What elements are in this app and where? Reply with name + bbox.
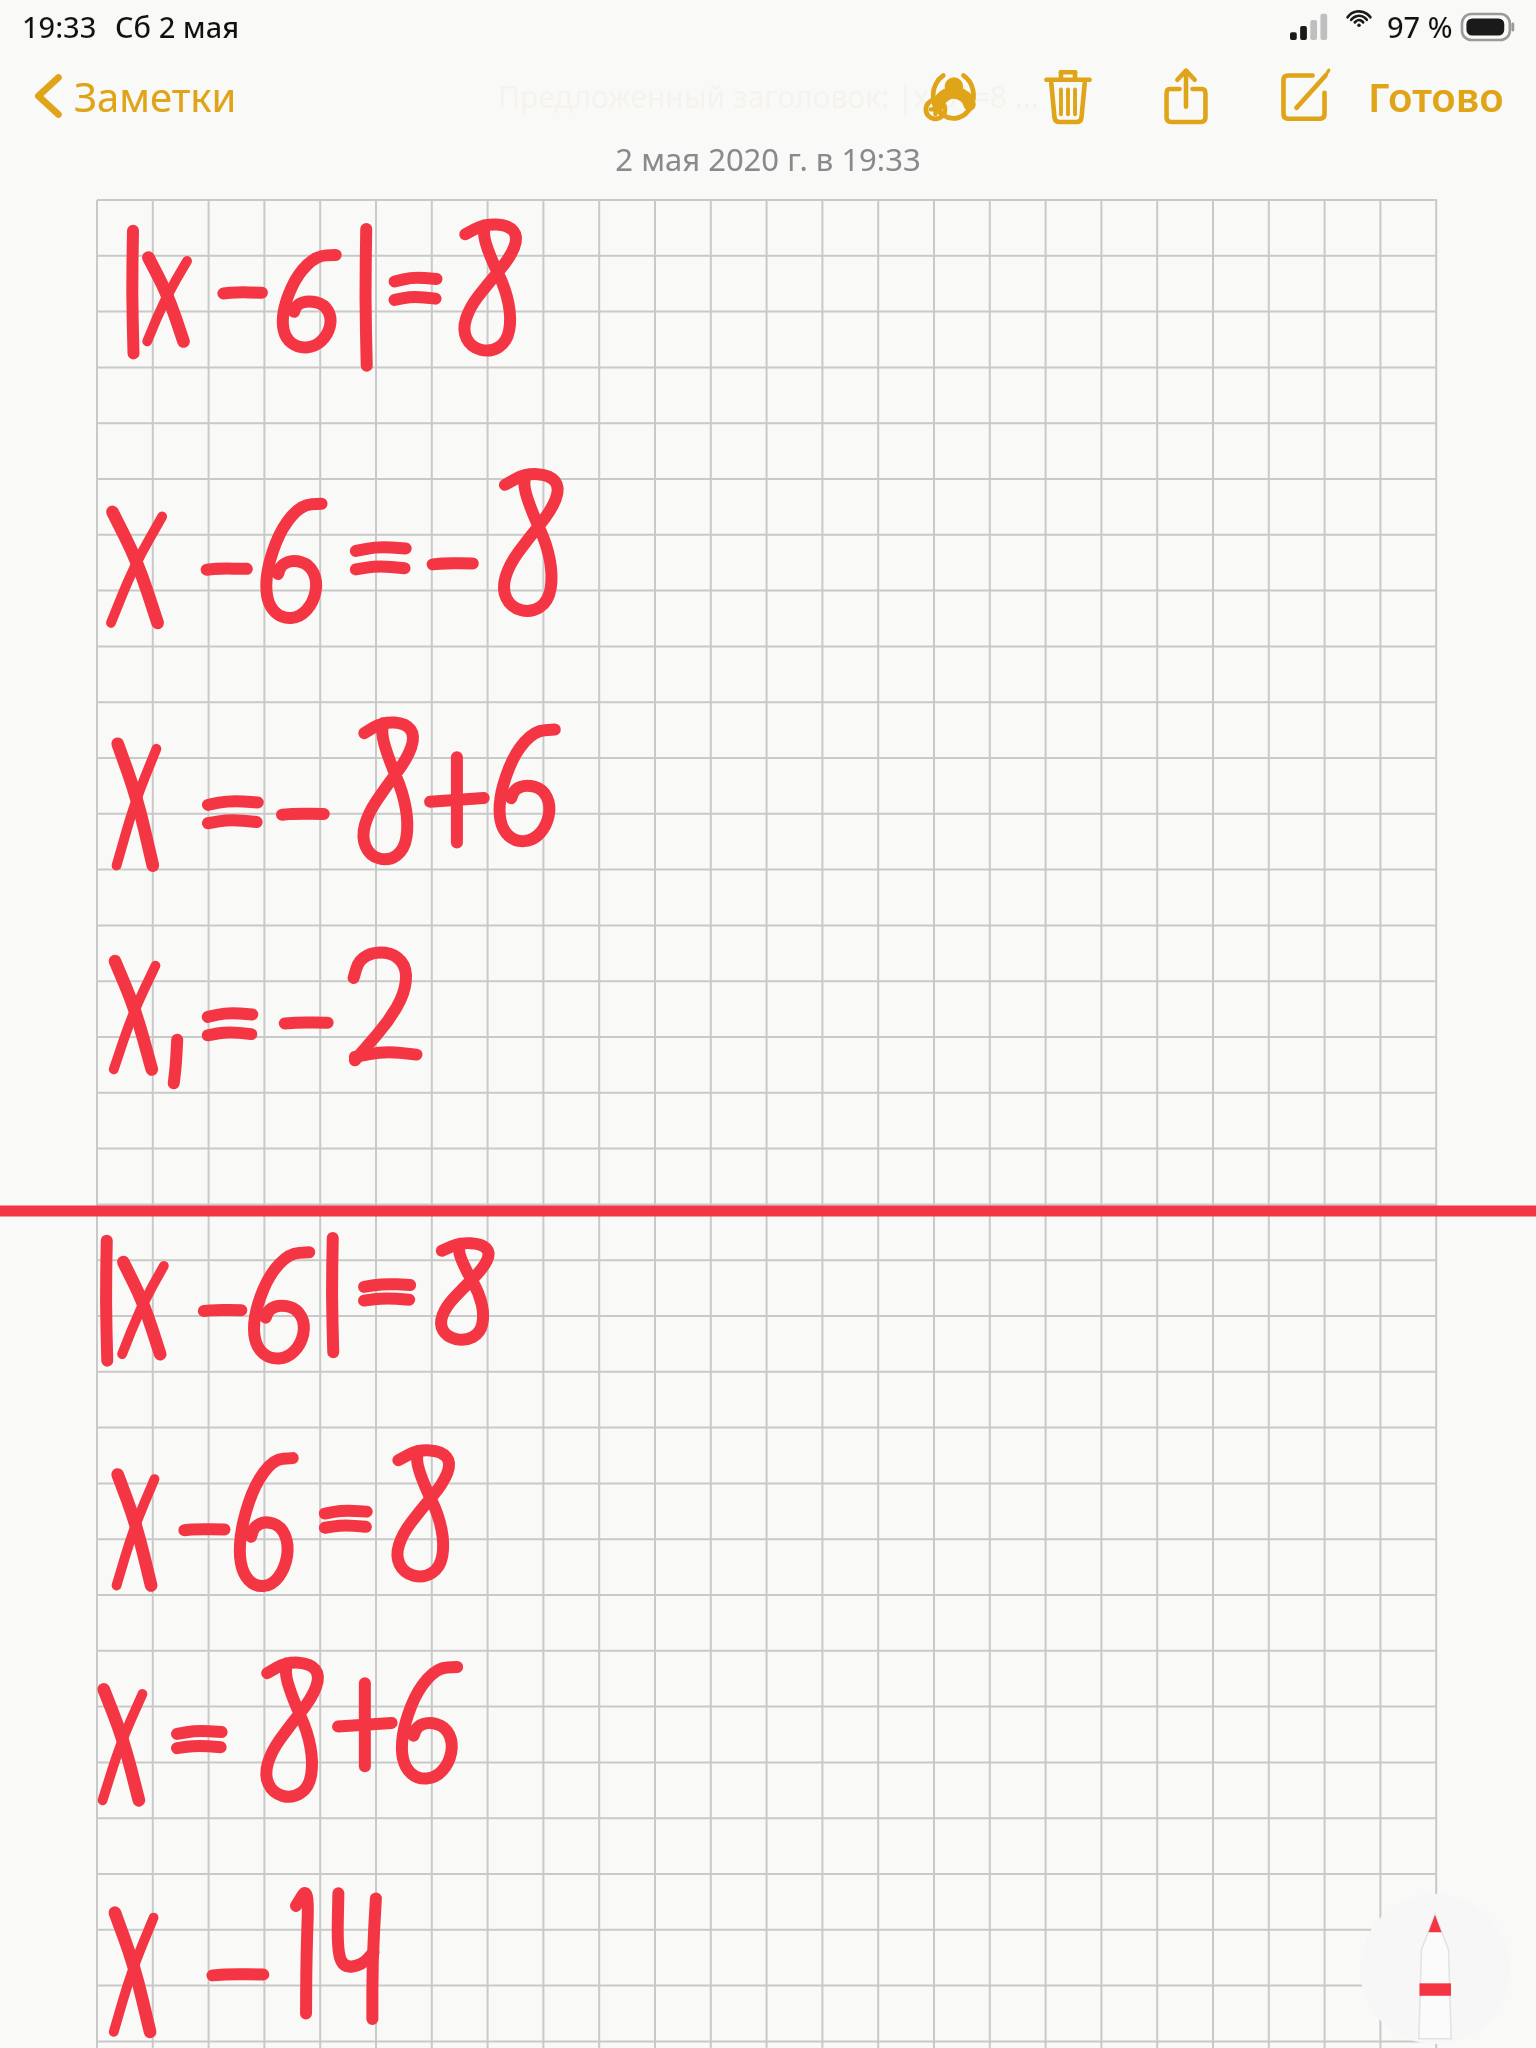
button[interactable]: Compose (1266, 58, 1342, 134)
button[interactable]: Share (1148, 58, 1224, 134)
staticText: Заметки (74, 69, 237, 123)
button[interactable]: Markup tools (1360, 1894, 1510, 2044)
staticText: Готово (1368, 69, 1504, 123)
button[interactable]: Add People (912, 58, 988, 134)
staticText: Сб 2 мая (115, 7, 240, 46)
button[interactable]: Готово (1362, 58, 1510, 134)
staticText: 19:33 (22, 7, 97, 46)
staticText: Предложенный заголовок: |x-6|=8 ... (498, 76, 1039, 117)
staticText: 2 мая 2020 г. в 19:33 (615, 138, 921, 180)
button[interactable]: Delete (1030, 58, 1106, 134)
button[interactable]: Заметки (28, 58, 237, 134)
staticText: 97 % (1387, 7, 1453, 46)
